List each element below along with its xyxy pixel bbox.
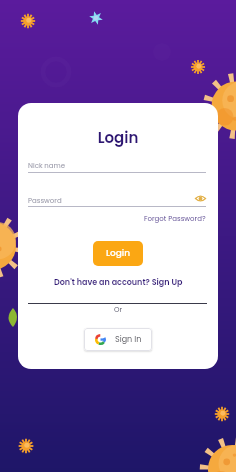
staticText: Login bbox=[106, 247, 131, 260]
staticText: Or bbox=[114, 305, 123, 315]
button[interactable]: Login bbox=[93, 241, 143, 266]
staticText: Password bbox=[28, 196, 195, 206]
button[interactable]: Forgot Password? bbox=[144, 214, 206, 224]
staticText: Login bbox=[18, 127, 218, 148]
button[interactable]: Show password bbox=[195, 193, 206, 204]
button[interactable]: Sign In bbox=[84, 328, 152, 351]
staticText: Nick name bbox=[28, 161, 66, 171]
button[interactable]: Don't have an account? Sign Up bbox=[54, 277, 183, 288]
staticText: Sign In bbox=[115, 334, 142, 345]
